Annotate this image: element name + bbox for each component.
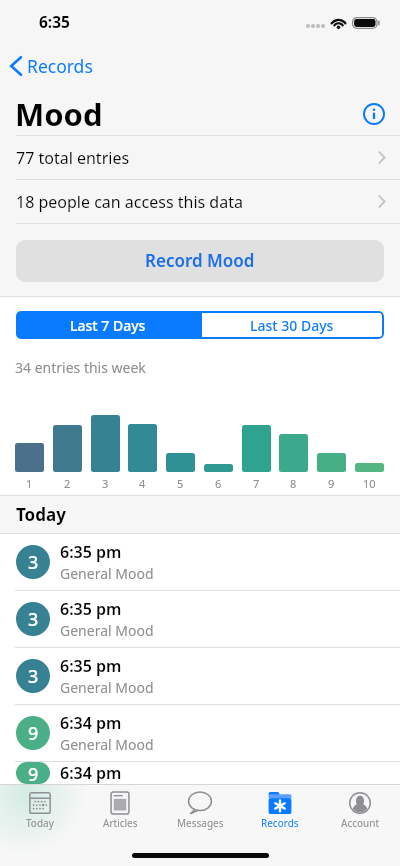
staticText: Today: [16, 503, 66, 526]
staticText: 6:34 pm: [60, 762, 122, 784]
button[interactable]: Articles: [80, 792, 160, 834]
button[interactable]: Record Mood: [16, 240, 384, 282]
staticText: 3: [28, 664, 39, 689]
button[interactable]: 9: [0, 705, 400, 761]
staticText: 6:35: [39, 11, 70, 32]
staticText: Today: [26, 816, 54, 830]
button[interactable]: Today: [0, 792, 80, 834]
button[interactable]: Messages: [160, 792, 240, 834]
button[interactable]: 3: [0, 591, 400, 647]
button[interactable]: 9: [0, 762, 400, 784]
staticText: General Mood: [60, 564, 154, 583]
staticText: 2: [64, 476, 71, 491]
staticText: Messages: [177, 816, 224, 830]
staticText: Mood: [15, 93, 103, 135]
staticText: Record Mood: [145, 249, 255, 272]
button[interactable]: 18 people can access this data: [0, 180, 400, 223]
staticText: 8: [290, 476, 297, 491]
staticText: General Mood: [60, 621, 154, 640]
staticText: 9: [28, 721, 39, 746]
staticText: 6:34 pm: [60, 712, 122, 734]
staticText: 3: [28, 550, 39, 575]
staticText: Account: [341, 816, 380, 830]
staticText: 6:35 pm: [60, 541, 122, 563]
staticText: Articles: [103, 816, 138, 830]
button[interactable]: 77 total entries: [0, 136, 400, 179]
staticText: 18 people can access this data: [16, 191, 243, 213]
button[interactable]: Account: [320, 792, 400, 834]
staticText: 4: [139, 476, 146, 491]
staticText: 3: [102, 476, 109, 491]
staticText: 6:35 pm: [60, 598, 122, 620]
staticText: Last 7 Days: [70, 316, 146, 335]
staticText: 77 total entries: [16, 147, 130, 169]
staticText: 6:35 pm: [60, 655, 122, 677]
button[interactable]: Last 30 Days: [200, 311, 384, 339]
staticText: 6: [215, 476, 222, 491]
staticText: 9: [328, 476, 335, 491]
staticText: 10: [363, 476, 376, 491]
button[interactable]: Records: [0, 50, 103, 82]
staticText: 7: [253, 476, 260, 491]
button[interactable]: 3: [0, 534, 400, 590]
staticText: 34 entries this week: [15, 358, 146, 377]
staticText: 9: [28, 762, 39, 784]
staticText: 1: [26, 476, 33, 491]
staticText: Records: [27, 54, 93, 78]
button[interactable]: Info: [358, 98, 390, 130]
staticText: Records: [261, 816, 299, 830]
staticText: 5: [177, 476, 184, 491]
staticText: General Mood: [60, 678, 154, 697]
staticText: 3: [28, 607, 39, 632]
staticText: General Mood: [60, 735, 154, 754]
button[interactable]: 3: [0, 648, 400, 704]
staticText: Last 30 Days: [250, 316, 334, 335]
button[interactable]: Last 7 Days: [16, 311, 200, 339]
button[interactable]: Records: [240, 792, 320, 834]
